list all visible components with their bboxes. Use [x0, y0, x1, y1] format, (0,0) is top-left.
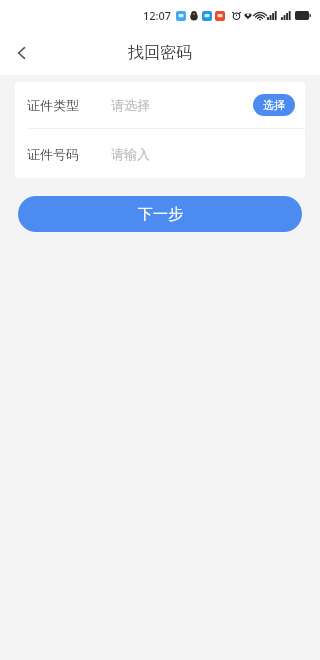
button[interactable]: 选择 [253, 94, 295, 116]
button[interactable]: 证件类型 [15, 82, 305, 128]
button[interactable]: 下一步 [18, 196, 302, 232]
staticText: 下一步 [138, 205, 183, 224]
staticText: 选择 [263, 98, 285, 112]
staticText: 12:07 [143, 8, 172, 23]
staticText: 证件号码 [27, 146, 79, 162]
staticText: 请选择 [111, 97, 150, 113]
staticText: 证件类型 [27, 97, 79, 113]
staticText: 找回密码 [128, 43, 192, 63]
button[interactable]: Back [0, 31, 44, 75]
staticText: 请输入 [111, 146, 150, 162]
button[interactable]: 证件号码 [15, 129, 305, 178]
